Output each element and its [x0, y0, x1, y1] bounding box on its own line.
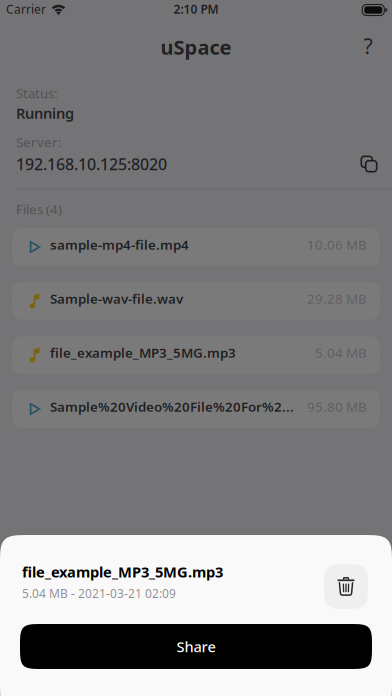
button[interactable]: ? — [363, 32, 372, 60]
staticText: file_example_MP3_5MG.mp3 — [22, 562, 223, 581]
staticText: Running — [16, 103, 74, 123]
staticText: 192.168.10.125:8020 — [16, 153, 167, 175]
staticText: 5.04 MB - 2021-03-21 02:09 — [22, 585, 176, 601]
staticText: Sample-wav-file.wav — [50, 290, 183, 307]
staticText: file_example_MP3_5MG.mp3 — [50, 344, 236, 361]
staticText: Files (4) — [16, 200, 62, 218]
staticText: Share — [176, 637, 215, 656]
staticText: Sample%20Video%20File%20For%2... — [50, 398, 294, 415]
button[interactable]: sample-mp4-file.mp4 — [12, 228, 380, 266]
staticText: Carrier — [6, 1, 46, 17]
button[interactable]: Sample%20Video%20File%20For%2... — [12, 390, 380, 428]
staticText: Server: — [16, 133, 62, 151]
staticText: uSpace — [160, 34, 231, 60]
staticText: ? — [363, 32, 372, 60]
staticText: 10.06 MB — [307, 236, 367, 253]
button[interactable]: Sample-wav-file.wav — [12, 282, 380, 320]
button[interactable]: file_example_MP3_5MG.mp3 — [12, 336, 380, 374]
staticText: 2:10 PM — [173, 1, 218, 17]
staticText: Status: — [16, 84, 58, 102]
staticText: sample-mp4-file.mp4 — [50, 236, 189, 253]
button[interactable] — [324, 564, 368, 609]
staticText: 29.28 MB — [307, 290, 367, 307]
staticText: 5.04 MB — [315, 344, 367, 361]
button[interactable] — [360, 155, 378, 173]
staticText: 95.80 MB — [307, 398, 367, 415]
button[interactable]: Share — [20, 624, 372, 669]
